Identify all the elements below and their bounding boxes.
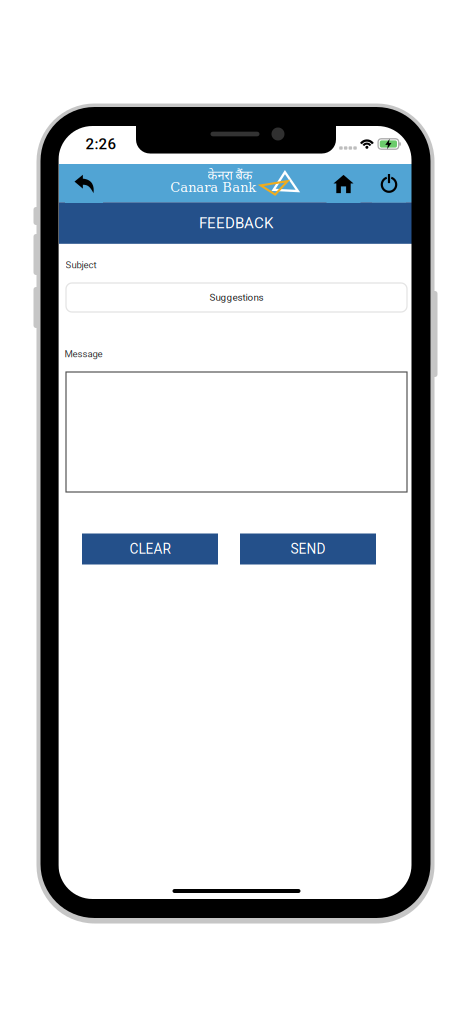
button[interactable]: CLEAR xyxy=(82,533,218,564)
staticText: केनरा बैंक xyxy=(207,168,252,185)
staticText: 2:26 xyxy=(85,135,116,153)
button[interactable]: Suggestions xyxy=(66,283,407,312)
staticText: Subject xyxy=(65,259,96,271)
staticText: CLEAR xyxy=(129,541,170,557)
button[interactable]: SEND xyxy=(240,533,376,564)
staticText: Canara Bank xyxy=(170,180,256,195)
staticText: Suggestions xyxy=(209,292,263,303)
button[interactable]: Home xyxy=(326,165,360,203)
button[interactable]: Back xyxy=(65,165,103,203)
staticText: SEND xyxy=(290,541,325,557)
staticText: FEEDBACK xyxy=(199,214,273,232)
button[interactable]: Log out xyxy=(372,164,406,202)
staticText: Message xyxy=(64,348,102,360)
